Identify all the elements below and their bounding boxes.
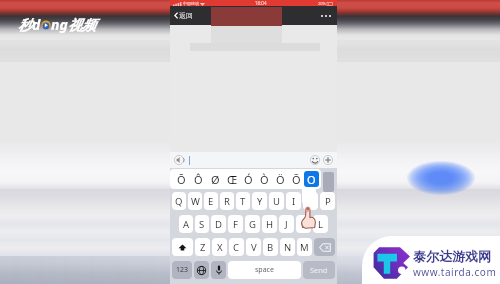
button[interactable]: Ø (207, 169, 224, 189)
button[interactable]: X (212, 238, 227, 256)
button[interactable]: P (320, 192, 335, 210)
staticText: Ó (244, 172, 253, 187)
button[interactable]: Y (252, 192, 267, 210)
button[interactable]: Send (303, 261, 335, 279)
staticText: Õ (292, 172, 301, 187)
staticText: C (233, 241, 240, 254)
staticText: Ō (177, 172, 186, 187)
staticText: D (215, 218, 222, 231)
staticText: W (191, 195, 200, 208)
button[interactable]: Ò (256, 169, 272, 189)
staticText: ng视频 (51, 15, 96, 34)
staticText: 中国移动 (183, 1, 199, 6)
staticText: G (249, 218, 256, 231)
button[interactable]: R (220, 192, 234, 210)
button[interactable]: N (280, 238, 295, 256)
button[interactable]: H (262, 215, 277, 233)
button[interactable]: G (245, 215, 260, 233)
staticText: Send (310, 265, 328, 275)
staticText: I (292, 195, 296, 208)
staticText: 18:04 (255, 0, 267, 6)
button[interactable]: Ô (190, 169, 207, 189)
button[interactable]: E (204, 192, 218, 210)
button[interactable]: Delete (314, 238, 335, 256)
button[interactable]: 123 (172, 261, 192, 279)
button[interactable]: B (263, 238, 278, 256)
button[interactable]: M (297, 238, 312, 256)
button[interactable]: Z (195, 238, 210, 256)
staticText: 泰尔达游戏网 (413, 248, 491, 264)
staticText: space (255, 265, 274, 275)
button[interactable]: Voice (174, 155, 184, 165)
staticText: Ø (211, 172, 220, 187)
staticText: L (318, 218, 323, 231)
button[interactable]: Ō (173, 169, 190, 189)
staticText: Ò (260, 172, 269, 187)
staticText: Q (175, 195, 183, 208)
staticText: V (251, 241, 257, 254)
button[interactable]: J (279, 215, 294, 233)
button[interactable]: Microphone (211, 261, 226, 279)
button[interactable]: S (195, 215, 209, 233)
button[interactable]: space (228, 261, 301, 279)
staticText: Ö (276, 172, 285, 187)
staticText: T (240, 195, 246, 208)
button[interactable]: I (286, 192, 301, 210)
staticText: O (307, 195, 315, 208)
staticText: E (208, 195, 214, 208)
button[interactable]: V (246, 238, 261, 256)
button[interactable]: More options (318, 11, 334, 21)
staticText: P (325, 195, 331, 208)
staticText: X (217, 241, 223, 254)
staticText: 返回 (179, 11, 193, 20)
staticText: Ô (194, 172, 203, 187)
staticText: H (266, 218, 274, 231)
staticText: Y (257, 195, 263, 208)
button[interactable]: W (188, 192, 202, 210)
button[interactable]: Language (194, 261, 209, 279)
button[interactable]: Õ (288, 169, 304, 189)
staticText: www.tairda.com (413, 265, 497, 279)
button[interactable]: F (228, 215, 243, 233)
button[interactable]: A (179, 215, 193, 233)
staticText: 123 (176, 265, 189, 275)
staticText: K (301, 218, 307, 231)
button[interactable]: C (229, 238, 244, 256)
staticText: F (233, 218, 238, 231)
button[interactable]: Ó (240, 169, 256, 189)
button[interactable]: Emoji (310, 155, 320, 165)
button[interactable]: L (313, 215, 328, 233)
staticText: B (267, 241, 274, 254)
button[interactable]: Shift (172, 238, 193, 256)
staticText: Z (200, 241, 206, 254)
button[interactable]: O (303, 192, 318, 210)
staticText: O (307, 172, 316, 187)
staticText: 秒d (18, 15, 41, 34)
staticText: U (273, 195, 280, 208)
button[interactable]: T (236, 192, 250, 210)
button[interactable]: Q (172, 192, 186, 210)
button[interactable]: O (304, 171, 319, 187)
staticText: M (300, 241, 309, 254)
button[interactable]: Add (323, 155, 333, 165)
button[interactable]: 返回 (173, 9, 194, 22)
button[interactable]: Ö (272, 169, 288, 189)
button[interactable]: Œ (224, 169, 240, 189)
button[interactable]: D (211, 215, 226, 233)
staticText: 20% (318, 1, 326, 6)
staticText: A (183, 218, 190, 231)
button[interactable]: U (269, 192, 284, 210)
staticText: N (284, 241, 292, 254)
staticText: R (224, 195, 230, 208)
staticText: J (285, 218, 288, 231)
staticText: S (199, 218, 205, 231)
button[interactable]: K (296, 215, 311, 233)
staticText: Œ (227, 172, 238, 187)
